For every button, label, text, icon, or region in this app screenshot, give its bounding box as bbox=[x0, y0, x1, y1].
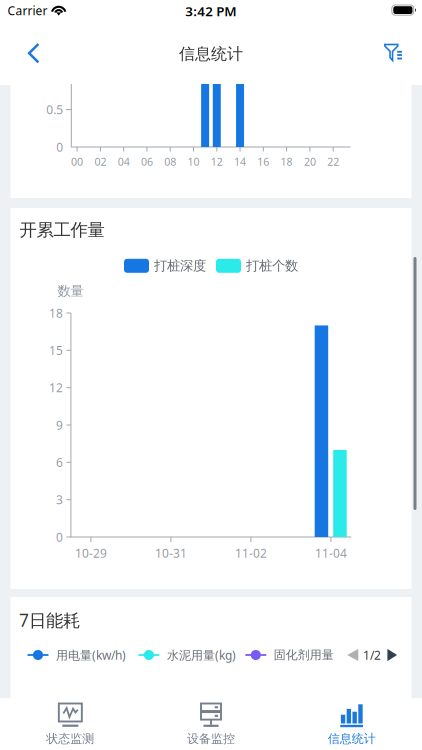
staticText: 0.5 bbox=[46, 102, 63, 117]
staticText: 02 bbox=[94, 154, 106, 169]
staticText: 用电量(kw/h) bbox=[56, 647, 126, 663]
button[interactable]: Previous page bbox=[342, 645, 363, 665]
staticText: 3:42 PM bbox=[185, 2, 236, 20]
staticText: 18 bbox=[49, 305, 63, 321]
button[interactable]: Next page bbox=[381, 645, 401, 665]
staticText: 9 bbox=[56, 417, 63, 433]
staticText: 16 bbox=[257, 154, 269, 169]
staticText: Carrier bbox=[8, 2, 48, 18]
staticText: 08 bbox=[164, 154, 176, 169]
staticText: 15 bbox=[49, 342, 63, 358]
staticText: 状态监测 bbox=[46, 731, 94, 746]
staticText: 0 bbox=[56, 529, 63, 545]
staticText: 10-29 bbox=[75, 545, 107, 561]
staticText: 1/2 bbox=[363, 647, 381, 663]
staticText: 11-02 bbox=[235, 545, 267, 561]
staticText: 6 bbox=[56, 454, 63, 470]
staticText: 0 bbox=[56, 139, 63, 155]
staticText: 打桩深度 bbox=[154, 258, 206, 274]
staticText: 12 bbox=[49, 380, 63, 396]
staticText: 22 bbox=[327, 154, 339, 169]
staticText: 开累工作量 bbox=[19, 219, 104, 241]
staticText: 3 bbox=[56, 492, 63, 508]
staticText: 设备监控 bbox=[187, 731, 235, 746]
staticText: 7日能耗 bbox=[19, 608, 80, 631]
staticText: 信息统计 bbox=[328, 731, 376, 746]
staticText: 10-31 bbox=[155, 545, 187, 561]
staticText: 06 bbox=[141, 154, 153, 169]
staticText: 18 bbox=[281, 154, 293, 169]
staticText: 00 bbox=[71, 154, 83, 169]
staticText: 数量 bbox=[58, 283, 84, 299]
staticText: 水泥用量(kg) bbox=[167, 647, 236, 663]
button[interactable]: 信息统计 bbox=[281, 698, 422, 750]
staticText: 12 bbox=[211, 154, 223, 169]
button[interactable]: Filter bbox=[370, 29, 416, 75]
staticText: 11-04 bbox=[315, 545, 347, 561]
button[interactable]: Back bbox=[11, 30, 57, 76]
staticText: 10 bbox=[187, 154, 199, 169]
staticText: 固化剂用量 bbox=[274, 648, 334, 662]
button[interactable]: 状态监测 bbox=[0, 698, 141, 750]
staticText: 打桩个数 bbox=[246, 258, 298, 274]
staticText: 14 bbox=[234, 154, 246, 169]
staticText: 20 bbox=[304, 154, 316, 169]
staticText: 信息统计 bbox=[179, 44, 243, 64]
staticText: 04 bbox=[118, 154, 130, 169]
button[interactable]: 设备监控 bbox=[141, 698, 281, 750]
